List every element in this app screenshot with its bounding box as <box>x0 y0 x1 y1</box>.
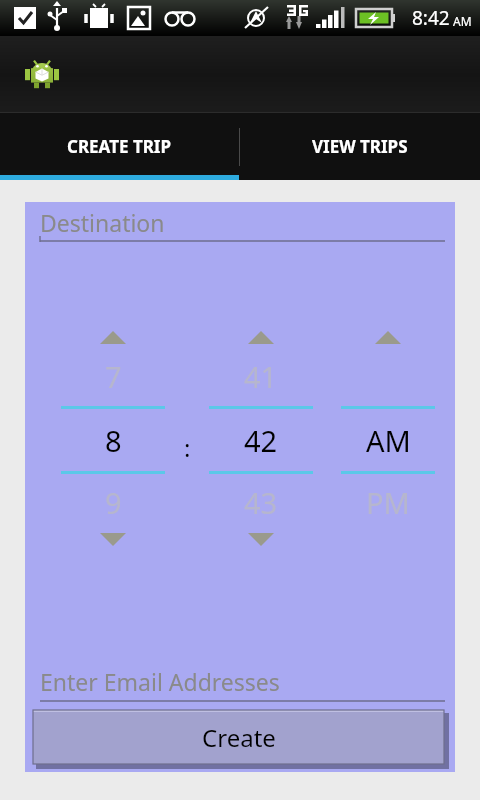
staticText: PM <box>366 483 410 522</box>
button[interactable]: 7 <box>53 354 173 398</box>
button[interactable]: AM <box>333 409 443 471</box>
staticText: 8:42 <box>412 5 450 31</box>
staticText: 9 <box>105 483 122 522</box>
staticText: Create <box>202 721 276 754</box>
staticText: 43 <box>244 483 278 522</box>
staticText: AM <box>366 421 411 460</box>
staticText: CREATE TRIP <box>67 135 172 158</box>
button[interactable]: VIEW TRIPS <box>240 113 480 180</box>
staticText: : <box>184 431 191 464</box>
staticText: AM <box>453 13 472 29</box>
staticText: 8 <box>105 421 122 460</box>
staticText: 7 <box>105 357 122 396</box>
staticText: Enter Email Addresses <box>40 666 280 697</box>
button[interactable]: PM <box>333 480 443 524</box>
staticText: 42 <box>244 421 278 460</box>
button[interactable]: 8 <box>53 409 173 471</box>
button[interactable]: 41 <box>201 354 321 398</box>
button[interactable]: Decrement Hour <box>53 524 173 554</box>
staticText: VIEW TRIPS <box>312 135 408 158</box>
button[interactable]: Increment AM PM <box>333 320 443 354</box>
staticText: 41 <box>244 357 278 396</box>
button[interactable]: Decrement Minute <box>201 524 321 554</box>
staticText: Destination <box>40 207 165 238</box>
button[interactable]: 42 <box>201 409 321 471</box>
button[interactable]: Increment Minute <box>201 320 321 354</box>
button[interactable]: CREATE TRIP <box>0 113 239 180</box>
button[interactable]: 43 <box>201 480 321 524</box>
button[interactable]: App icon <box>22 55 62 95</box>
button[interactable]: 9 <box>53 480 173 524</box>
button[interactable]: Increment Hour <box>53 320 173 354</box>
button[interactable]: Enter Email Addresses <box>40 660 445 702</box>
button[interactable]: Destination <box>40 202 445 242</box>
button[interactable]: Create <box>33 710 447 767</box>
